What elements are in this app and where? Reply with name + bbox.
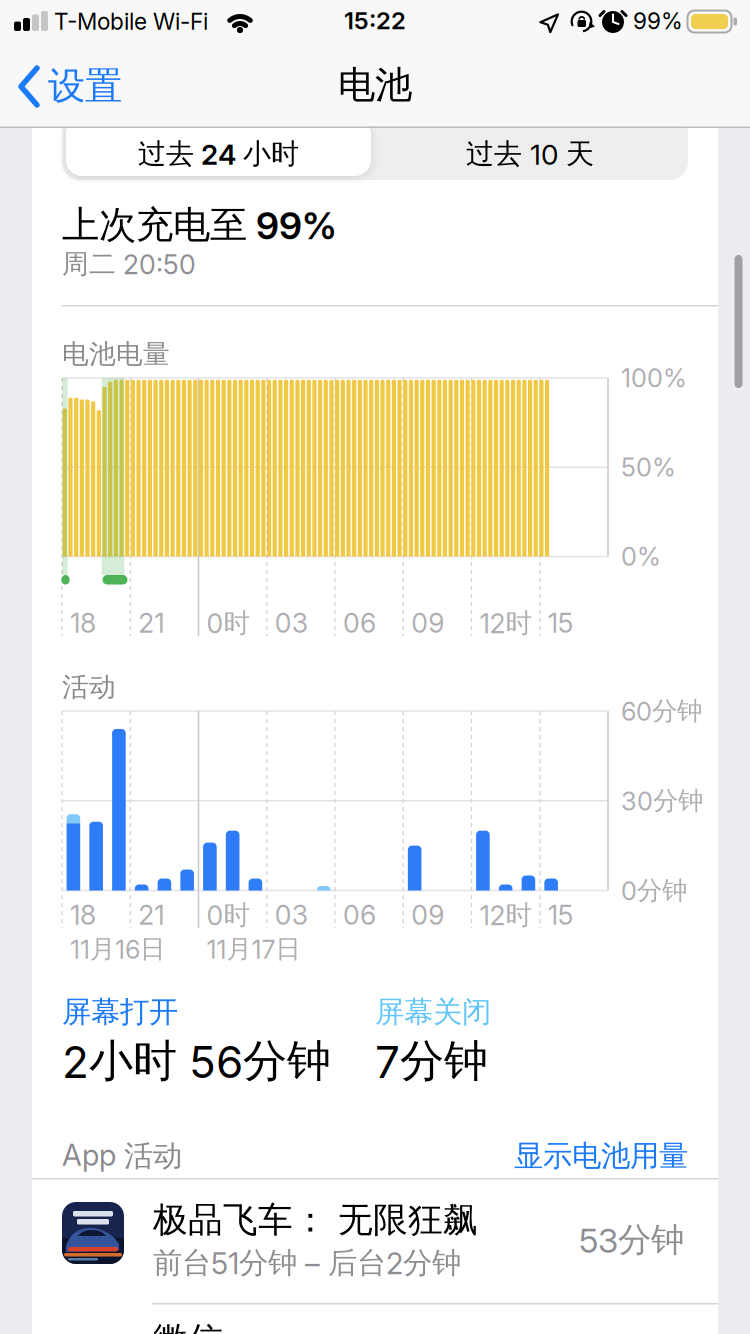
staticText: 电池电量 <box>62 338 170 370</box>
staticText: 09 <box>411 607 444 639</box>
staticText: 06 <box>343 899 376 931</box>
staticText: 21 <box>138 607 164 639</box>
staticText: 50% <box>621 452 676 482</box>
staticText: 09 <box>411 899 444 931</box>
staticText: T-Mobile Wi-Fi <box>54 8 208 35</box>
button[interactable]: 极品飞车： 无限狂飙 <box>32 1179 718 1304</box>
button[interactable] <box>66 118 371 176</box>
staticText: 微信 <box>153 1319 223 1334</box>
staticText: 过去 24 小时 <box>138 137 299 171</box>
staticText: 设置 <box>48 63 122 109</box>
staticText: 显示电池用量 <box>514 1138 688 1174</box>
staticText: 周二 20:50 <box>62 248 196 280</box>
staticText: 100% <box>621 363 687 393</box>
staticText: 18 <box>70 899 96 931</box>
button[interactable]: 显示电池用量 <box>428 1126 688 1186</box>
staticText: 99% <box>633 8 683 34</box>
staticText: App 活动 <box>62 1138 182 1174</box>
staticText: 0分钟 <box>621 875 687 906</box>
staticText: 屏幕关闭 <box>375 994 491 1030</box>
staticText: 11月16日 <box>70 933 165 964</box>
staticText: 15 <box>548 899 574 931</box>
staticText: 15:22 <box>344 6 406 35</box>
staticText: 活动 <box>62 671 116 703</box>
staticText: 06 <box>343 607 376 639</box>
button[interactable]: 设置 <box>0 0 130 128</box>
staticText: 过去 10 天 <box>466 137 594 171</box>
staticText: 0时 <box>206 607 250 639</box>
staticText: 7分钟 <box>375 1034 488 1088</box>
staticText: 极品飞车： 无限狂飙 <box>153 1199 478 1241</box>
staticText: 30分钟 <box>621 785 703 816</box>
staticText: 0% <box>621 542 661 571</box>
staticText: 12时 <box>479 607 532 639</box>
staticText: 03 <box>275 899 308 931</box>
staticText: 0时 <box>206 899 250 931</box>
button[interactable] <box>62 114 688 180</box>
staticText: 18 <box>70 607 96 639</box>
staticText: 上次充电至 99% <box>62 202 337 248</box>
staticText: 11月17日 <box>206 933 300 964</box>
staticText: 53分钟 <box>579 1219 684 1260</box>
staticText: 12时 <box>479 899 532 931</box>
staticText: 03 <box>275 607 308 639</box>
staticText: 电池 <box>338 62 412 108</box>
staticText: 前台51分钟 – 后台2分钟 <box>153 1245 461 1281</box>
staticText: 15 <box>548 607 574 639</box>
staticText: 2小时 56分钟 <box>62 1034 331 1088</box>
staticText: 屏幕打开 <box>62 994 178 1030</box>
staticText: 60分钟 <box>621 695 702 726</box>
staticText: 21 <box>138 899 164 931</box>
